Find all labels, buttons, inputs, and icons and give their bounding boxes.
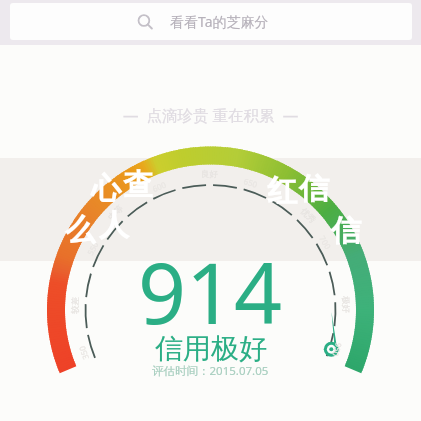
staticText: 较差: [70, 297, 81, 314]
staticText: 红: [267, 172, 297, 210]
staticText: 950: [330, 341, 345, 358]
staticText: 心: [91, 170, 121, 208]
staticText: 350: [76, 344, 91, 361]
staticText: 极好: [340, 296, 351, 313]
staticText: 良好: [201, 169, 218, 180]
button[interactable]: 看看Ta的芝麻分: [10, 3, 412, 40]
staticText: 信用极好: [155, 331, 267, 366]
staticText: 650: [242, 175, 259, 190]
staticText: 信: [331, 212, 361, 250]
staticText: 914: [138, 234, 283, 348]
staticText: — 点滴珍贵 重在积累 —: [123, 104, 299, 125]
staticText: 优秀: [298, 206, 318, 226]
staticText: 中等: [106, 203, 126, 223]
staticText: 评估时间：2015.07.05: [152, 363, 269, 379]
staticText: 信: [299, 170, 329, 208]
staticText: 700: [317, 233, 334, 251]
staticText: 么: [65, 211, 95, 249]
staticText: 查: [123, 166, 153, 204]
staticText: 600: [151, 179, 168, 194]
staticText: 看看Ta的芝麻分: [170, 12, 269, 31]
staticText: 550: [84, 239, 100, 257]
staticText: 人: [99, 206, 129, 244]
